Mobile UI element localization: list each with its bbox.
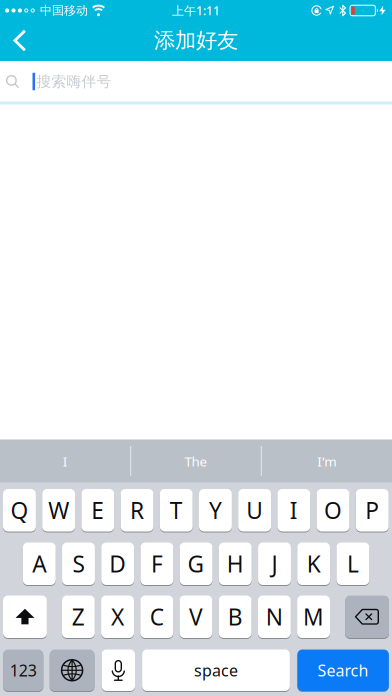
button[interactable]: Z [62, 595, 95, 638]
staticText: A [32, 549, 46, 579]
button[interactable]: 搜索嗨伴号 [0, 61, 392, 102]
button[interactable]: space [142, 649, 290, 691]
staticText: R [130, 495, 144, 525]
button[interactable]: S [62, 542, 95, 585]
button[interactable]: W [42, 488, 75, 532]
button[interactable]: Numbers [3, 649, 43, 691]
staticText: U [246, 495, 263, 525]
staticText: 中国移动 [40, 3, 88, 18]
staticText: N [266, 602, 283, 632]
button[interactable]: M [297, 595, 330, 638]
staticText: E [91, 495, 104, 525]
button[interactable]: G [180, 542, 213, 585]
button[interactable]: Shift [3, 595, 47, 638]
staticText: I [290, 495, 298, 525]
staticText: F [151, 549, 163, 579]
button[interactable]: A [23, 542, 56, 585]
staticText: H [227, 549, 244, 579]
staticText: Search [318, 660, 369, 681]
button[interactable]: F [140, 542, 173, 585]
staticText: S [72, 549, 84, 579]
button[interactable]: Search [297, 649, 389, 691]
button[interactable]: Q [3, 488, 36, 532]
staticText: G [188, 549, 205, 579]
button[interactable]: V [179, 595, 212, 638]
button[interactable]: L [336, 542, 369, 585]
button[interactable]: P [356, 488, 389, 532]
staticText: V [189, 602, 203, 632]
staticText: 添加好友 [154, 27, 238, 54]
staticText: J [271, 549, 277, 579]
button[interactable]: J [258, 542, 291, 585]
staticText: P [365, 495, 379, 525]
staticText: I’m [317, 452, 336, 470]
staticText: 上午1:11 [172, 2, 220, 18]
staticText: I [63, 452, 68, 470]
staticText: B [228, 602, 243, 632]
button[interactable]: T [160, 488, 193, 532]
staticText: L [347, 549, 359, 579]
button[interactable]: Y [199, 488, 232, 532]
button[interactable]: The [131, 439, 261, 483]
button[interactable]: I [277, 488, 310, 532]
button[interactable]: X [101, 595, 134, 638]
staticText: Z [72, 602, 85, 632]
button[interactable]: I’m [262, 439, 392, 483]
button[interactable]: E [81, 488, 114, 532]
button[interactable]: K [297, 542, 330, 585]
button[interactable]: Dictate [102, 649, 135, 691]
button[interactable]: Back [3, 20, 37, 60]
button[interactable]: C [140, 595, 173, 638]
staticText: K [307, 549, 321, 579]
staticText: D [109, 549, 126, 579]
staticText: Y [209, 495, 222, 525]
staticText: X [111, 602, 124, 632]
button[interactable]: O [317, 488, 349, 532]
staticText: M [303, 602, 324, 632]
button[interactable]: Delete [345, 595, 389, 638]
staticText: W [48, 495, 69, 525]
staticText: 搜索嗨伴号 [37, 72, 112, 90]
staticText: 123 [10, 660, 37, 681]
button[interactable]: H [219, 542, 252, 585]
button[interactable]: B [219, 595, 252, 638]
button[interactable]: U [238, 488, 271, 532]
staticText: Q [10, 495, 28, 525]
button[interactable]: I [0, 439, 130, 483]
button[interactable]: N [258, 595, 291, 638]
button[interactable]: D [101, 542, 134, 585]
staticText: T [170, 495, 183, 525]
staticText: C [150, 602, 164, 632]
staticText: The [184, 452, 207, 470]
button[interactable]: Next keyboard [50, 649, 94, 691]
staticText: space [194, 660, 238, 681]
button[interactable]: R [121, 488, 153, 532]
staticText: O [324, 495, 342, 525]
